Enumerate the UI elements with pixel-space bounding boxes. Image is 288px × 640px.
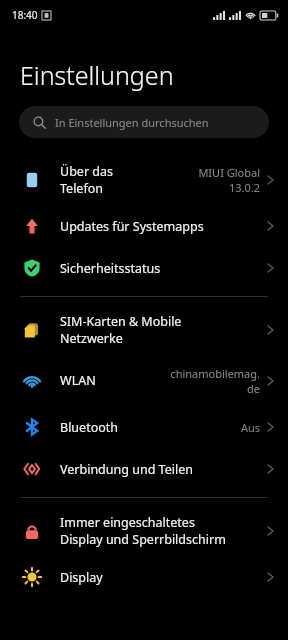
staticText: Immer eingeschaltetes Display und Sperrb… [60,514,267,547]
button[interactable]: Sicherheitsstatus [0,247,288,289]
staticText: Sicherheitsstatus [60,260,267,277]
button[interactable]: SIM-Karten & Mobile Netzwerke [0,304,288,355]
staticText: Einstellungen [20,58,174,92]
staticText: WLAN [60,372,170,389]
button[interactable]: Updates für Systemapps [0,205,288,247]
staticText: Über das Telefon [60,163,198,196]
button[interactable]: Bluetooth [0,406,288,448]
button[interactable]: In Einstellungen durchsuchen [19,106,269,138]
staticText: Verbindung und Teilen [60,461,267,478]
staticText: Bluetooth [60,419,240,436]
staticText: chinamobilemag. de [170,366,260,396]
button[interactable]: Display [0,556,288,598]
staticText: Updates für Systemapps [60,218,267,235]
staticText: Display [60,569,267,586]
button[interactable]: Über das Telefon [0,154,288,205]
staticText: Aus [240,420,260,435]
button[interactable]: Immer eingeschaltetes Display und Sperrb… [0,505,288,556]
button[interactable]: Verbindung und Teilen [0,448,288,490]
staticText: In Einstellungen durchsuchen [55,115,209,130]
staticText: SIM-Karten & Mobile Netzwerke [60,313,267,346]
staticText: MIUI Global 13.0.2 [198,165,260,195]
button[interactable]: WLAN [0,355,288,406]
staticText: 18:40 [12,8,38,22]
